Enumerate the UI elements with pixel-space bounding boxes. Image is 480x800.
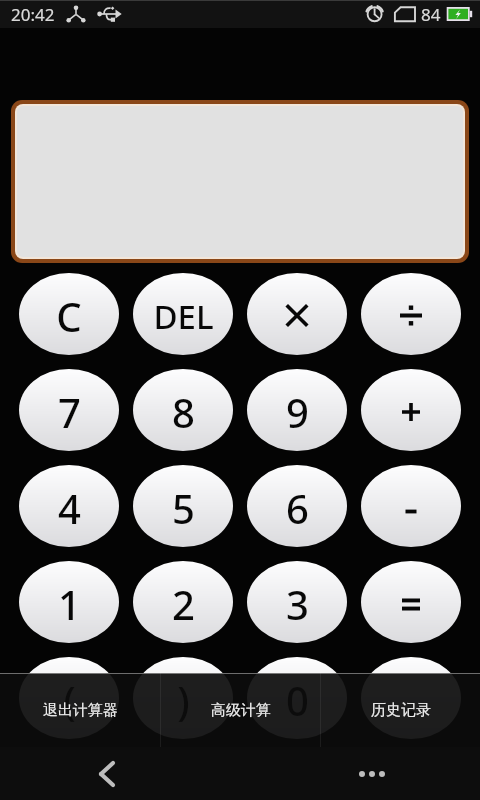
button[interactable]: 6 bbox=[247, 465, 347, 547]
staticText: 退出计算器 bbox=[43, 701, 118, 720]
staticText: 9 bbox=[286, 385, 309, 439]
staticText: ( bbox=[63, 673, 76, 727]
button[interactable]: 9 bbox=[247, 369, 347, 451]
button[interactable]: 3 bbox=[247, 561, 347, 643]
button[interactable]: 8 bbox=[133, 369, 233, 451]
staticText: 2 bbox=[172, 577, 195, 631]
staticText: 3 bbox=[286, 577, 309, 631]
staticText: 84 bbox=[421, 3, 441, 26]
button[interactable]: ( bbox=[19, 657, 119, 739]
button[interactable]: 0 bbox=[247, 657, 347, 739]
button[interactable] bbox=[361, 465, 461, 547]
button[interactable]: Menu bbox=[357, 764, 387, 784]
button[interactable]: 历史记录 bbox=[321, 673, 480, 747]
staticText: 4 bbox=[58, 481, 81, 535]
button[interactable]: 退出计算器 bbox=[0, 673, 160, 747]
button[interactable]: ) bbox=[133, 657, 233, 739]
staticText: 5 bbox=[172, 481, 195, 535]
button[interactable]: 2 bbox=[133, 561, 233, 643]
staticText: 6 bbox=[286, 481, 309, 535]
button[interactable]: 高级计算 bbox=[161, 673, 320, 747]
staticText: 历史记录 bbox=[371, 701, 431, 720]
button[interactable] bbox=[361, 561, 461, 643]
button[interactable]: 4 bbox=[19, 465, 119, 547]
staticText: 8 bbox=[172, 385, 195, 439]
button[interactable]: C bbox=[19, 273, 119, 355]
staticText: 0 bbox=[286, 673, 309, 727]
button[interactable]: 1 bbox=[19, 561, 119, 643]
button[interactable]: 5 bbox=[133, 465, 233, 547]
staticText: . bbox=[406, 673, 417, 727]
staticText: DEL bbox=[153, 294, 214, 339]
button[interactable] bbox=[361, 273, 461, 355]
button[interactable]: DEL bbox=[133, 273, 233, 355]
staticText: ) bbox=[177, 673, 190, 727]
button[interactable] bbox=[247, 273, 347, 355]
staticText: 1 bbox=[58, 577, 81, 631]
staticText: 7 bbox=[58, 385, 81, 439]
button[interactable]: Back bbox=[99, 761, 115, 787]
button[interactable]: . bbox=[361, 657, 461, 739]
staticText: 20:42 bbox=[11, 3, 55, 26]
staticText: C bbox=[56, 289, 82, 343]
button[interactable]: 7 bbox=[19, 369, 119, 451]
button[interactable] bbox=[361, 369, 461, 451]
staticText: 高级计算 bbox=[211, 701, 271, 720]
